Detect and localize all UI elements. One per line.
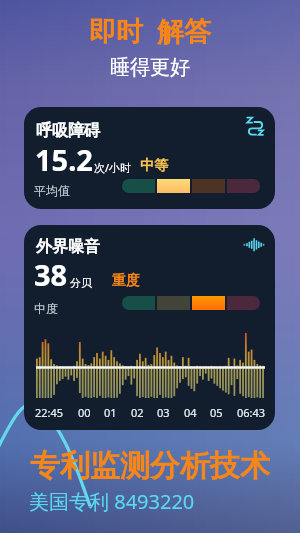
button[interactable]: 外界噪音 — [24, 225, 275, 430]
staticText: 呼吸障碍 — [36, 121, 100, 141]
staticText: 02 — [131, 405, 144, 420]
button[interactable]: 呼吸障碍 — [24, 107, 275, 209]
staticText: 重度 — [112, 272, 140, 290]
staticText: 美国专利 8493220 — [29, 488, 195, 515]
staticText: 次/小时 — [94, 160, 132, 175]
staticText: 外界噪音 — [36, 237, 100, 257]
staticText: 06:43 — [237, 405, 266, 420]
staticText: 专利监测分析技术 — [0, 447, 300, 485]
button[interactable]: Noise level — [243, 232, 265, 254]
staticText: 分贝 — [70, 276, 92, 290]
staticText: 03 — [157, 405, 170, 420]
button[interactable]: Sleep apnea — [245, 115, 267, 137]
button[interactable] — [122, 296, 260, 310]
staticText: 睡得更好 — [0, 55, 300, 80]
button[interactable] — [122, 179, 260, 193]
staticText: 00 — [78, 405, 91, 420]
staticText: 22:45 — [35, 405, 64, 420]
staticText: 01 — [104, 405, 117, 420]
staticText: 38 — [34, 255, 68, 294]
staticText: 即时 解答 — [0, 12, 300, 49]
staticText: 04 — [184, 405, 197, 420]
staticText: 15.2 — [35, 140, 93, 179]
staticText: 05 — [210, 405, 223, 420]
staticText: 中等 — [140, 157, 168, 175]
staticText: 平均值 — [34, 183, 70, 198]
staticText: 中度 — [34, 301, 58, 316]
